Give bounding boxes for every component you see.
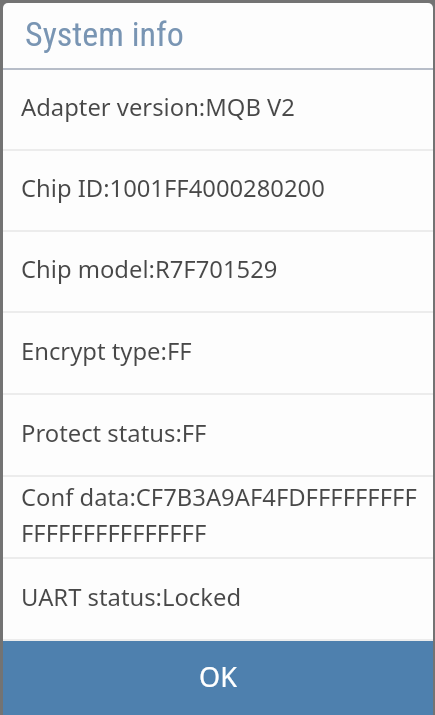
button[interactable]: UART status:Locked	[3, 559, 433, 641]
staticText: Chip ID:1001FF4000280200	[21, 172, 325, 204]
button[interactable]: OK	[3, 641, 433, 715]
button[interactable]: System info	[3, 3, 433, 68]
staticText: Protect status:FF	[21, 417, 207, 449]
staticText: Encrypt type:FF	[21, 335, 192, 367]
button[interactable]: Encrypt type:FF	[3, 313, 433, 395]
staticText: UART status:Locked	[21, 581, 242, 613]
staticText: Chip model:R7F701529	[21, 253, 278, 285]
staticText: OK	[199, 658, 237, 695]
staticText: Conf data:CF7B3A9AF4FDFFFFFFFFFFFFFFFFFF…	[21, 481, 419, 549]
button[interactable]: Conf data:CF7B3A9AF4FDFFFFFFFFFFFFFFFFFF…	[3, 477, 433, 559]
button[interactable]: Adapter version:MQB V2	[3, 70, 433, 151]
button[interactable]: Chip ID:1001FF4000280200	[3, 151, 433, 232]
button[interactable]: Chip model:R7F701529	[3, 232, 433, 313]
button[interactable]: Protect status:FF	[3, 395, 433, 477]
staticText: Adapter version:MQB V2	[21, 91, 295, 123]
staticText: System info	[25, 14, 184, 54]
